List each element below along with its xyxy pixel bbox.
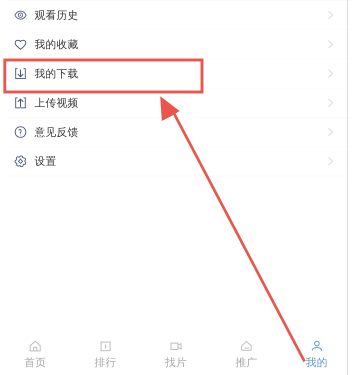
button[interactable]: 我的下载	[0, 59, 352, 88]
staticText: 观看历史	[34, 9, 78, 22]
staticText: 意见反馈	[34, 125, 78, 139]
staticText: 首页	[24, 356, 46, 369]
staticText: 我的下载	[34, 67, 78, 80]
staticText: 我的收藏	[34, 38, 78, 51]
staticText: 推广	[235, 356, 257, 369]
button[interactable]: 排行	[70, 335, 141, 370]
staticText: 设置	[34, 155, 56, 168]
button[interactable]: 我的	[282, 335, 352, 370]
button[interactable]: 观看历史	[0, 1, 352, 29]
staticText: 找片	[165, 356, 187, 369]
staticText: 排行	[95, 356, 117, 369]
button[interactable]: 我的收藏	[0, 30, 352, 58]
button[interactable]: 找片	[141, 335, 211, 370]
button[interactable]: 设置	[0, 147, 352, 175]
button[interactable]: 首页	[0, 335, 70, 370]
button[interactable]: 上传视频	[0, 89, 352, 117]
staticText: 上传视频	[34, 96, 78, 109]
button[interactable]: 推广	[211, 335, 282, 370]
button[interactable]: 意见反馈	[0, 118, 352, 146]
staticText: 我的	[306, 356, 328, 369]
